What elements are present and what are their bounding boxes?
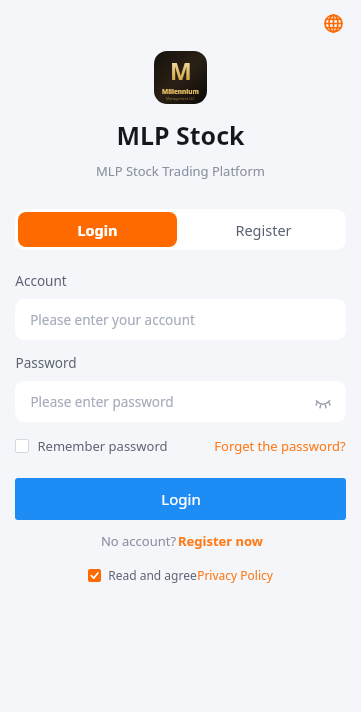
- staticText: Login: [161, 489, 201, 509]
- button[interactable]: Remember password: [15, 437, 168, 455]
- button[interactable]: Login: [15, 478, 346, 520]
- staticText: M: [170, 55, 192, 86]
- staticText: Forget the password?: [214, 437, 346, 455]
- button[interactable]: Register: [180, 209, 346, 250]
- staticText: Password: [15, 354, 77, 372]
- staticText: Please enter your account: [30, 311, 195, 329]
- button[interactable]: Show password: [312, 391, 334, 413]
- button[interactable]: Read and agree: [88, 567, 273, 583]
- staticText: MLP Stock: [116, 118, 245, 152]
- staticText: Please enter password: [30, 393, 174, 411]
- staticText: Register now: [178, 532, 263, 550]
- button[interactable]: Forget the password?: [214, 437, 346, 455]
- staticText: Login: [77, 220, 118, 240]
- staticText: Read and agree: [108, 567, 197, 583]
- staticText: Remember password: [37, 437, 168, 455]
- staticText: Millennium: [162, 87, 199, 96]
- staticText: Register: [235, 220, 292, 240]
- button[interactable]: Login: [18, 212, 177, 247]
- button[interactable]: Please enter your account: [15, 299, 346, 340]
- button[interactable]: Register now: [178, 532, 263, 550]
- staticText: Management LLC: [166, 96, 195, 101]
- staticText: Privacy Policy: [197, 567, 273, 583]
- staticText: No account?: [99, 532, 178, 550]
- button[interactable]: Please enter password: [15, 381, 346, 422]
- staticText: MLP Stock Trading Platform: [96, 162, 265, 180]
- button[interactable]: Language: [319, 9, 347, 37]
- staticText: Account: [15, 272, 67, 290]
